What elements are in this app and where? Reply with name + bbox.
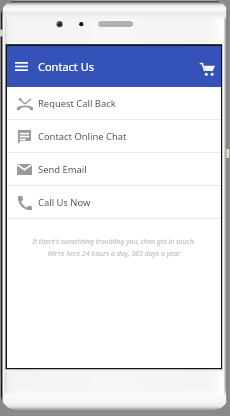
staticText: Send Email (38, 163, 87, 176)
button[interactable]: Send Email (7, 153, 221, 186)
button[interactable]: Contact Online Chat (7, 120, 221, 153)
staticText: Contact Online Chat (38, 130, 127, 143)
staticText: Request Call Back (38, 97, 116, 110)
staticText: Call Us Now (38, 196, 91, 209)
button[interactable]: Shopping cart (193, 53, 221, 81)
button[interactable]: Open navigation menu (8, 53, 34, 79)
button[interactable]: Request Call Back (7, 87, 221, 120)
staticText: It there's something troubling you, then… (7, 237, 221, 247)
staticText: We're here 24 hours a day, 365 days a ye… (7, 249, 221, 259)
staticText: Contact Us (38, 59, 94, 74)
button[interactable]: Call Us Now (7, 186, 221, 219)
